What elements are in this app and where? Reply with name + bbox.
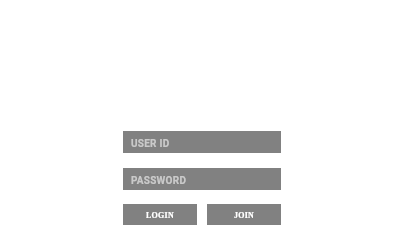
button[interactable]: USER ID xyxy=(123,131,281,153)
button[interactable]: JOIN xyxy=(207,204,281,225)
button[interactable]: LOGIN xyxy=(123,204,197,225)
staticText: USER ID xyxy=(131,138,170,150)
staticText: JOIN xyxy=(234,211,255,220)
staticText: PASSWORD xyxy=(131,175,187,187)
staticText: LOGIN xyxy=(146,211,174,220)
button[interactable]: PASSWORD xyxy=(123,168,281,190)
